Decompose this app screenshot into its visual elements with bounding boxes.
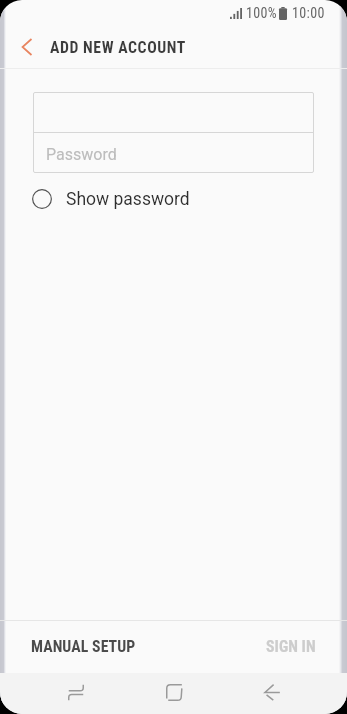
staticText: SIGN IN	[266, 637, 316, 656]
staticText: ADD NEW ACCOUNT	[50, 38, 186, 57]
button[interactable]: SIGN IN	[173, 621, 347, 673]
button[interactable]: Recents	[55, 673, 96, 714]
staticText: 10:00	[292, 5, 325, 21]
staticText: 100%	[246, 5, 277, 21]
button[interactable]	[33, 92, 314, 132]
button[interactable]: Password	[33, 133, 314, 173]
staticText: Show password	[66, 189, 190, 210]
staticText: MANUAL SETUP	[31, 637, 136, 656]
button[interactable]: Home	[153, 673, 194, 714]
button[interactable]: MANUAL SETUP	[0, 621, 173, 673]
button[interactable]: Navigate up	[0, 26, 48, 69]
button[interactable]: Back	[251, 673, 292, 714]
staticText: Password	[46, 145, 117, 164]
button[interactable]: Show password	[0, 180, 347, 218]
